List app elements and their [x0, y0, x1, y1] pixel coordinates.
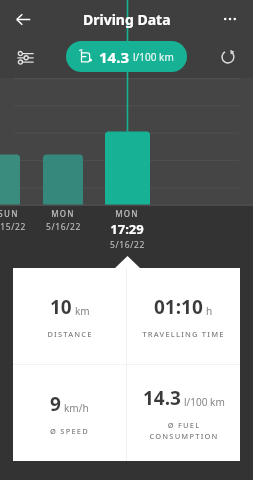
staticText: DISTANCE: [47, 329, 93, 339]
staticText: 5/16/22: [110, 239, 145, 251]
button[interactable]: Refresh: [213, 42, 243, 72]
button[interactable]: 9: [13, 365, 126, 461]
staticText: l/100 km: [133, 50, 174, 64]
staticText: 14.3: [99, 47, 129, 67]
staticText: h: [206, 304, 213, 318]
button[interactable]: 14.3: [127, 365, 240, 461]
staticText: km: [75, 304, 90, 318]
staticText: 10: [50, 294, 72, 320]
staticText: TRAVELLING TIME: [142, 329, 225, 339]
button[interactable]: More options: [215, 4, 245, 34]
staticText: 9: [50, 391, 61, 417]
button[interactable]: Back: [8, 4, 38, 34]
staticText: 01:10: [154, 294, 203, 320]
button[interactable]: 01:10: [127, 268, 240, 364]
button[interactable]: Filter: [10, 42, 40, 72]
staticText: MON: [115, 208, 139, 219]
staticText: 5/15/22: [0, 221, 26, 233]
staticText: Driving Data: [83, 10, 171, 29]
staticText: Ø SPEED: [50, 426, 89, 436]
staticText: 5/16/22: [46, 221, 81, 233]
button[interactable]: 14.3: [66, 41, 187, 72]
staticText: l/100 km: [184, 395, 225, 409]
staticText: km/h: [64, 401, 89, 415]
button[interactable]: 10: [13, 268, 126, 364]
staticText: SUN: [0, 208, 19, 219]
staticText: Ø FUEL CONSUMPTION: [149, 420, 219, 441]
staticText: 17:29: [110, 220, 144, 238]
staticText: 14.3: [143, 385, 181, 411]
staticText: MON: [51, 208, 75, 219]
